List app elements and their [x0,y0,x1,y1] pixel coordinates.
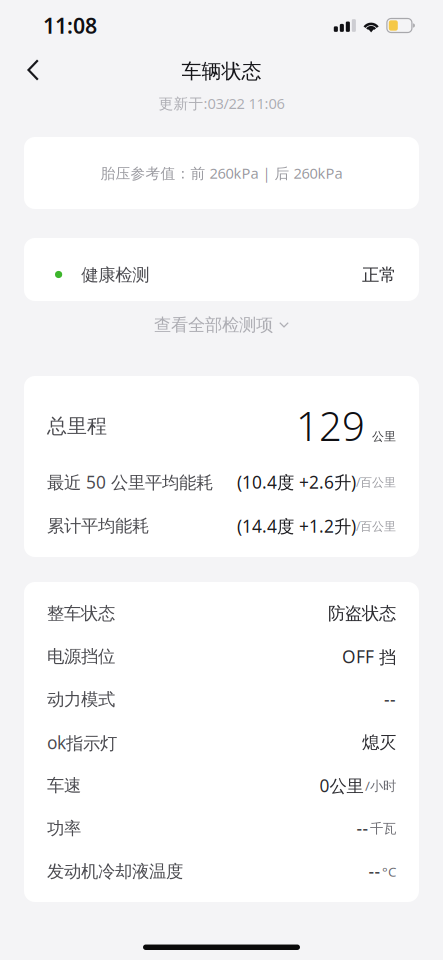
staticText: 动力模式 [47,689,115,710]
staticText: 车辆状态 [181,59,261,84]
staticText: 功率 [47,818,81,839]
staticText: 胎压参考值：前 260kPa | 后 260kPa [100,163,342,183]
staticText: 发动机冷却液温度 [47,861,183,882]
staticText: 查看全部检测项 [154,314,273,336]
staticText: -- [384,688,396,711]
staticText: 电源挡位 [47,646,115,667]
button[interactable]: Back [0,47,55,93]
staticText: 防盗状态 [328,603,396,624]
staticText: /百公里 [356,518,396,534]
staticText: 0公里 [319,774,363,797]
staticText: /小时 [365,777,396,794]
button[interactable]: 查看全部检测项 [0,311,443,339]
button[interactable]: 健康检测 [0,238,443,301]
staticText: 健康检测 [81,264,149,286]
staticText: -- [368,860,380,883]
staticText: 正常 [362,264,396,286]
staticText: (14.4度 +1.2升) [237,514,356,537]
staticText: 千瓦 [370,820,396,837]
staticText: 更新于:03/22 11:06 [158,93,284,113]
staticText: 129 [296,399,365,452]
staticText: 11:08 [43,11,97,40]
staticText: (10.4度 +2.6升) [237,470,356,493]
staticText: /百公里 [356,474,396,490]
staticText: 最近 50 公里平均能耗 [47,470,213,493]
staticText: 整车状态 [47,603,115,624]
staticText: -- [356,817,368,840]
staticText: 累计平均能耗 [47,515,149,537]
staticText: 公里 [372,429,396,444]
staticText: 熄灭 [362,732,396,753]
staticText: °C [382,863,396,880]
staticText: 车速 [47,775,81,796]
staticText: OFF 挡 [342,645,396,668]
staticText: 总里程 [47,414,107,438]
staticText: ok指示灯 [47,731,117,754]
